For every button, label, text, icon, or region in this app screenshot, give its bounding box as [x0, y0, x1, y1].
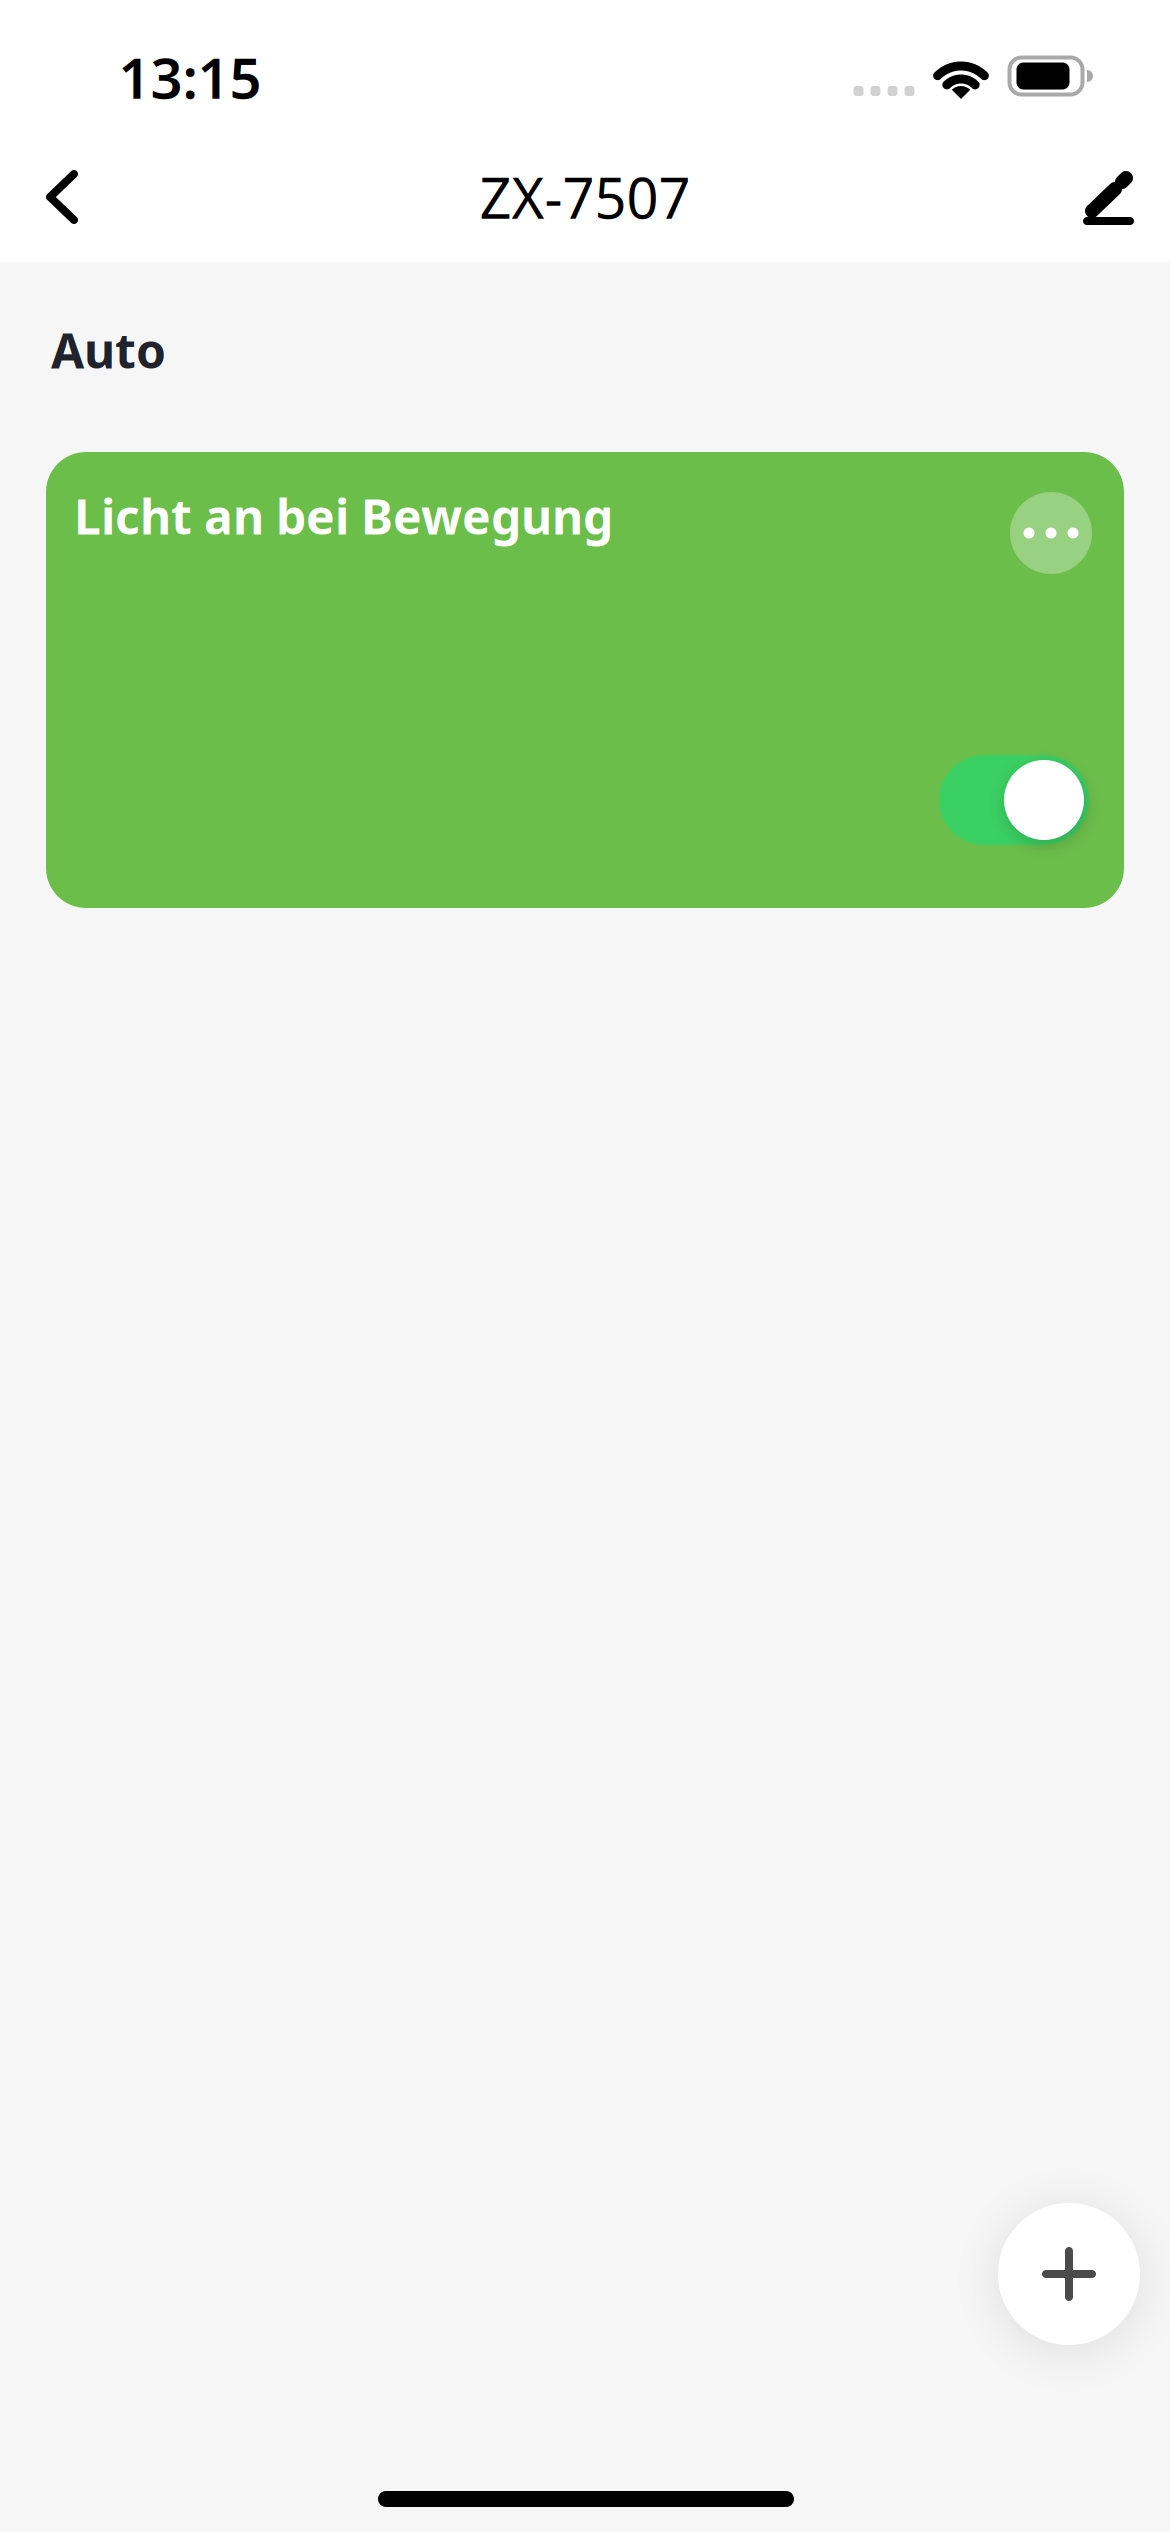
button[interactable]: Back [18, 153, 106, 241]
staticText: Auto [51, 318, 166, 382]
button[interactable]: Add [998, 2203, 1140, 2345]
button[interactable]: Licht an bei Bewegung [46, 452, 1124, 908]
staticText: 13:15 [118, 40, 261, 114]
button[interactable]: More options [1010, 492, 1092, 574]
button[interactable]: Edit [1060, 149, 1156, 245]
button[interactable]: On [939, 755, 1089, 845]
staticText: ZX-7507 [479, 160, 690, 234]
staticText: Licht an bei Bewegung [74, 484, 613, 548]
